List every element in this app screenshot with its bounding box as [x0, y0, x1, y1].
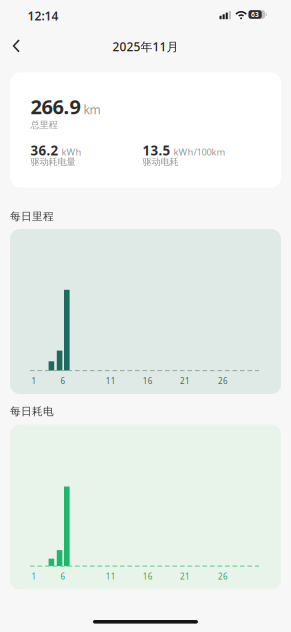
staticText: 驱动电耗 [142, 156, 178, 168]
staticText: 每日耗电 [10, 405, 54, 418]
staticText: kWh [61, 146, 81, 158]
staticText: 11 [106, 571, 116, 582]
staticText: kWh/100km [173, 146, 225, 158]
staticText: 6 [60, 376, 65, 386]
staticText: 21 [180, 571, 190, 582]
staticText: km [83, 102, 100, 118]
staticText: 驱动耗电量 [30, 156, 75, 168]
staticText: 26 [218, 571, 228, 582]
staticText: 16 [143, 571, 153, 582]
staticText: 36.2 [30, 141, 58, 159]
staticText: 266.9 [30, 93, 80, 120]
staticText: 13.5 [142, 141, 170, 159]
staticText: 12:14 [27, 8, 58, 24]
staticText: 6 [60, 571, 65, 582]
staticText: 63 [251, 10, 259, 19]
staticText: 2025年11月 [112, 39, 178, 54]
button[interactable]: Back [7, 34, 27, 58]
staticText: 每日里程 [10, 210, 54, 223]
staticText: 1 [31, 376, 36, 386]
staticText: 11 [106, 376, 116, 386]
staticText: 总里程 [30, 119, 57, 131]
staticText: 21 [180, 376, 190, 386]
staticText: 16 [143, 376, 153, 386]
staticText: 1 [31, 571, 36, 582]
staticText: 26 [218, 376, 228, 386]
